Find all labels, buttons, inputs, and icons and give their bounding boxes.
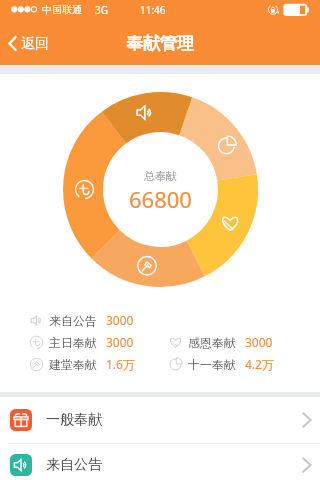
staticText: 中国联通 xyxy=(42,3,82,16)
staticText: 总奉献 xyxy=(144,169,177,183)
staticText: 3G xyxy=(95,3,108,17)
staticText: 十一奉献 xyxy=(188,357,236,372)
button[interactable]: 返回 xyxy=(0,27,57,59)
staticText: 主日奉献 xyxy=(49,335,97,350)
staticText: 建堂奉献 xyxy=(49,357,97,372)
staticText: 返回 xyxy=(21,35,49,53)
staticText: 66800 xyxy=(129,184,192,214)
button[interactable]: 来自公告 xyxy=(0,444,320,480)
staticText: 1.6万 xyxy=(106,356,135,372)
staticText: 3000 xyxy=(106,334,134,350)
staticText: 3000 xyxy=(106,312,134,328)
staticText: 来自公告 xyxy=(46,456,102,474)
staticText: 来自公告 xyxy=(49,313,97,328)
staticText: 奉献管理 xyxy=(126,33,194,54)
staticText: 感恩奉献 xyxy=(188,335,236,350)
staticText: 3000 xyxy=(245,334,273,350)
button[interactable]: 一般奉献 xyxy=(0,397,320,443)
staticText: 4.2万 xyxy=(245,356,274,372)
staticText: 一般奉献 xyxy=(46,411,102,429)
staticText: 11:46 xyxy=(140,3,166,17)
